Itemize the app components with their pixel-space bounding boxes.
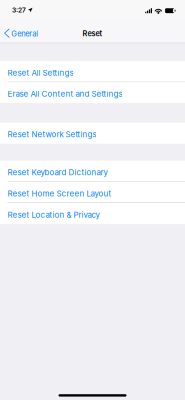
staticText: Reset Home Screen Layout bbox=[7, 189, 111, 198]
button[interactable]: Reset Network Settings bbox=[0, 123, 185, 144]
button[interactable]: General bbox=[0, 20, 43, 43]
button[interactable]: Reset Home Screen Layout bbox=[0, 182, 185, 203]
button[interactable]: Reset All Settings bbox=[0, 61, 185, 82]
staticText: Reset bbox=[82, 29, 102, 38]
button[interactable]: Reset Keyboard Dictionary bbox=[0, 161, 185, 182]
button[interactable]: Erase All Content and Settings bbox=[0, 82, 185, 103]
button[interactable]: Reset Location & Privacy bbox=[0, 203, 185, 224]
staticText: Reset All Settings bbox=[7, 68, 73, 78]
staticText: Reset Keyboard Dictionary bbox=[7, 168, 107, 177]
staticText: General bbox=[11, 29, 38, 38]
staticText: Reset Network Settings bbox=[7, 130, 96, 139]
staticText: Reset Location & Privacy bbox=[7, 210, 99, 220]
staticText: 3:27 bbox=[12, 6, 26, 14]
staticText: Erase All Content and Settings bbox=[7, 89, 122, 99]
